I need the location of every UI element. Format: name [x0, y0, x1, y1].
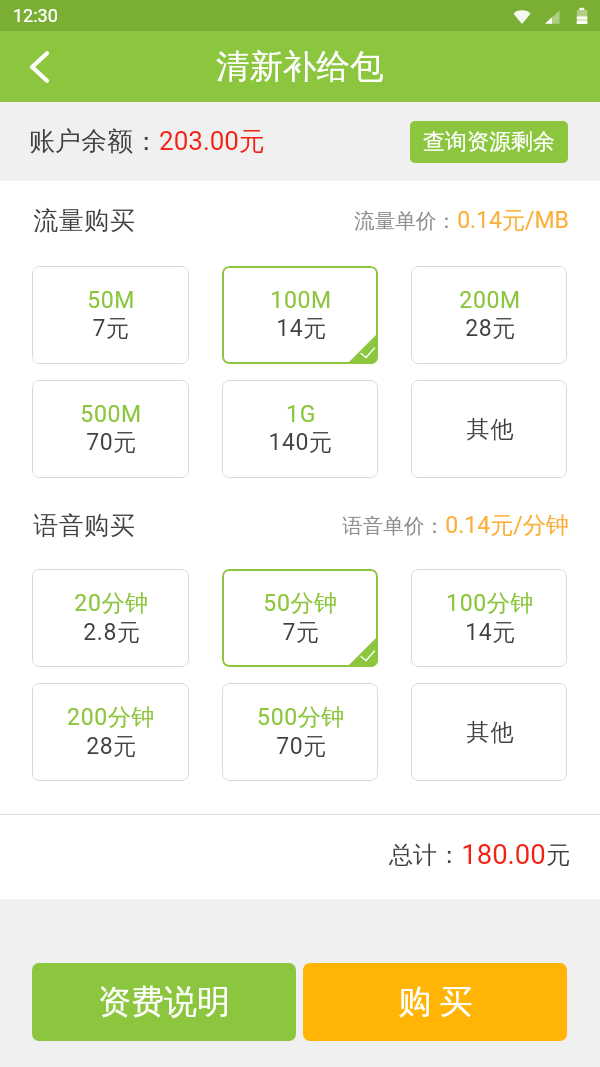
staticText: 28元	[465, 314, 516, 343]
button[interactable]: 其他	[411, 683, 567, 781]
button[interactable]: 200M	[411, 266, 567, 364]
staticText: 70元	[86, 428, 137, 457]
staticText: 12:30	[13, 5, 58, 26]
staticText: 清新补给包	[216, 46, 384, 88]
staticText: 其他	[466, 415, 514, 444]
staticText: 50M	[87, 287, 135, 314]
button[interactable]: 购 买	[303, 963, 567, 1041]
button[interactable]: Back	[0, 31, 78, 102]
staticText: 28元	[86, 732, 137, 761]
staticText: 7元	[282, 618, 320, 647]
button[interactable]: 200分钟	[32, 683, 189, 781]
staticText: 14元	[276, 314, 327, 343]
staticText: 总计：	[389, 840, 461, 870]
button[interactable]: 500M	[32, 380, 189, 478]
button[interactable]: 20分钟	[32, 569, 189, 667]
staticText: 语音单价：	[342, 513, 445, 539]
button[interactable]: 500分钟	[222, 683, 378, 781]
staticText: 流量单价：	[354, 208, 457, 234]
staticText: 流量购买	[33, 205, 135, 236]
staticText: 资费说明	[98, 981, 230, 1023]
staticText: 203.00元	[159, 125, 265, 158]
staticText: 200M	[459, 287, 521, 314]
button[interactable]: 100分钟	[411, 569, 567, 667]
staticText: 0.14元/分钟	[445, 511, 569, 540]
staticText: 语音购买	[33, 510, 135, 541]
staticText: 1G	[286, 401, 316, 428]
button[interactable]: 1G	[222, 380, 378, 478]
staticText: 账户余额：	[29, 125, 159, 158]
staticText: 50分钟	[263, 589, 338, 618]
staticText: 0.14元/MB	[457, 206, 569, 235]
staticText: 140元	[268, 428, 333, 457]
button[interactable]: 50分钟	[222, 569, 378, 667]
staticText: 7元	[92, 314, 130, 343]
staticText: 200分钟	[67, 703, 155, 732]
staticText: 500M	[80, 401, 142, 428]
staticText: 查询资源剩余	[423, 128, 555, 156]
other: Status icons	[0, 0, 600, 31]
staticText: 14元	[465, 618, 516, 647]
staticText: 70元	[276, 732, 327, 761]
button[interactable]: 其他	[411, 380, 567, 478]
staticText: 购 买	[398, 981, 473, 1023]
staticText: 元	[546, 840, 570, 870]
button[interactable]: 100M	[222, 266, 378, 364]
button[interactable]: 查询资源剩余	[410, 121, 568, 163]
staticText: 180.00	[461, 838, 546, 870]
staticText: 100M	[270, 287, 332, 314]
staticText: 100分钟	[446, 589, 534, 618]
button[interactable]: 50M	[32, 266, 189, 364]
staticText: 其他	[466, 718, 514, 747]
staticText: 2.8元	[83, 618, 141, 647]
button[interactable]: 资费说明	[32, 963, 296, 1041]
staticText: 20分钟	[74, 589, 149, 618]
staticText: 500分钟	[257, 703, 345, 732]
